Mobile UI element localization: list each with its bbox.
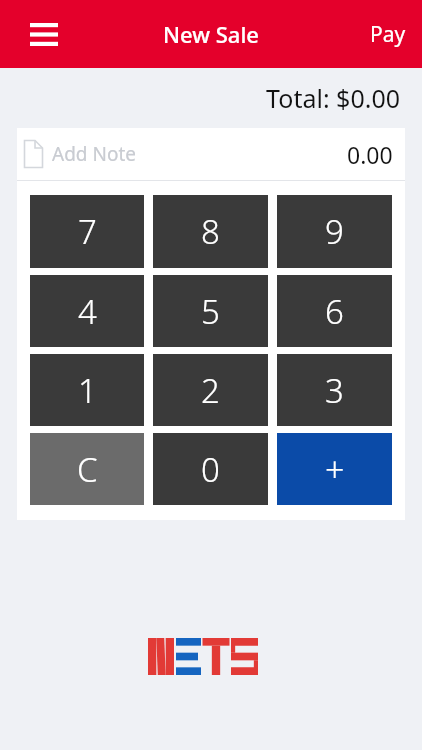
button[interactable]: Add Note: [17, 128, 405, 180]
staticText: 4: [78, 289, 97, 334]
button[interactable]: 9: [277, 195, 392, 268]
button[interactable]: 3: [277, 354, 392, 426]
staticText: 0.00: [347, 139, 393, 170]
staticText: +: [325, 446, 345, 492]
staticText: 3: [325, 368, 344, 413]
button[interactable]: C: [30, 433, 144, 505]
button[interactable]: 7: [30, 195, 144, 268]
staticText: C: [77, 447, 98, 492]
button[interactable]: 0: [153, 433, 268, 505]
staticText: 6: [325, 289, 344, 334]
staticText: 7: [78, 209, 97, 254]
button[interactable]: 2: [153, 354, 268, 426]
staticText: 2: [201, 368, 220, 413]
button[interactable]: 5: [153, 275, 268, 347]
button[interactable]: Menu: [16, 6, 72, 62]
staticText: 8: [201, 209, 220, 254]
staticText: 1: [78, 368, 97, 413]
staticText: Total: $0.00: [0, 81, 400, 115]
staticText: 0: [201, 447, 220, 492]
staticText: 5: [201, 289, 220, 334]
staticText: New Sale: [163, 19, 259, 49]
button[interactable]: 8: [153, 195, 268, 268]
staticText: Pay: [370, 20, 406, 49]
button[interactable]: Pay: [354, 0, 422, 68]
button[interactable]: 6: [277, 275, 392, 347]
button[interactable]: 1: [30, 354, 144, 426]
button[interactable]: 4: [30, 275, 144, 347]
staticText: 9: [325, 209, 344, 254]
staticText: Add Note: [52, 141, 136, 167]
button[interactable]: +: [277, 433, 392, 505]
